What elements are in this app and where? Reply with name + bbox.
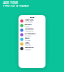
staticText: Selfies xyxy=(25,42,30,44)
staticText: 312 clips xyxy=(25,40,31,41)
staticText: Favourites xyxy=(25,28,34,30)
staticText: Screenshots xyxy=(25,33,36,35)
staticText: 128 photos xyxy=(25,30,34,32)
staticText: Camera Roll xyxy=(25,19,33,21)
staticText: ADD YOUR xyxy=(3,1,18,5)
staticText: Today xyxy=(25,26,30,28)
button[interactable]: Selfies xyxy=(18,42,45,46)
button[interactable]: Favourites xyxy=(18,28,45,32)
staticText: Recents xyxy=(25,24,32,25)
button[interactable]: Videos xyxy=(18,37,45,42)
staticText: 2,481 items xyxy=(25,21,33,23)
button[interactable]: Camera Roll xyxy=(18,19,45,23)
staticText: 43 items xyxy=(25,49,31,51)
button[interactable]: Live Photos xyxy=(18,46,45,51)
button[interactable]: Recents xyxy=(18,23,45,28)
staticText: Videos xyxy=(25,37,30,39)
button[interactable]: Screenshots xyxy=(18,32,45,37)
staticText: Live Photos xyxy=(25,47,34,48)
staticText: PHOTOS & VIDEOS xyxy=(3,4,29,7)
staticText: Albums xyxy=(29,16,34,18)
staticText: 76 items xyxy=(25,44,31,46)
staticText: 54 shots xyxy=(25,35,32,37)
